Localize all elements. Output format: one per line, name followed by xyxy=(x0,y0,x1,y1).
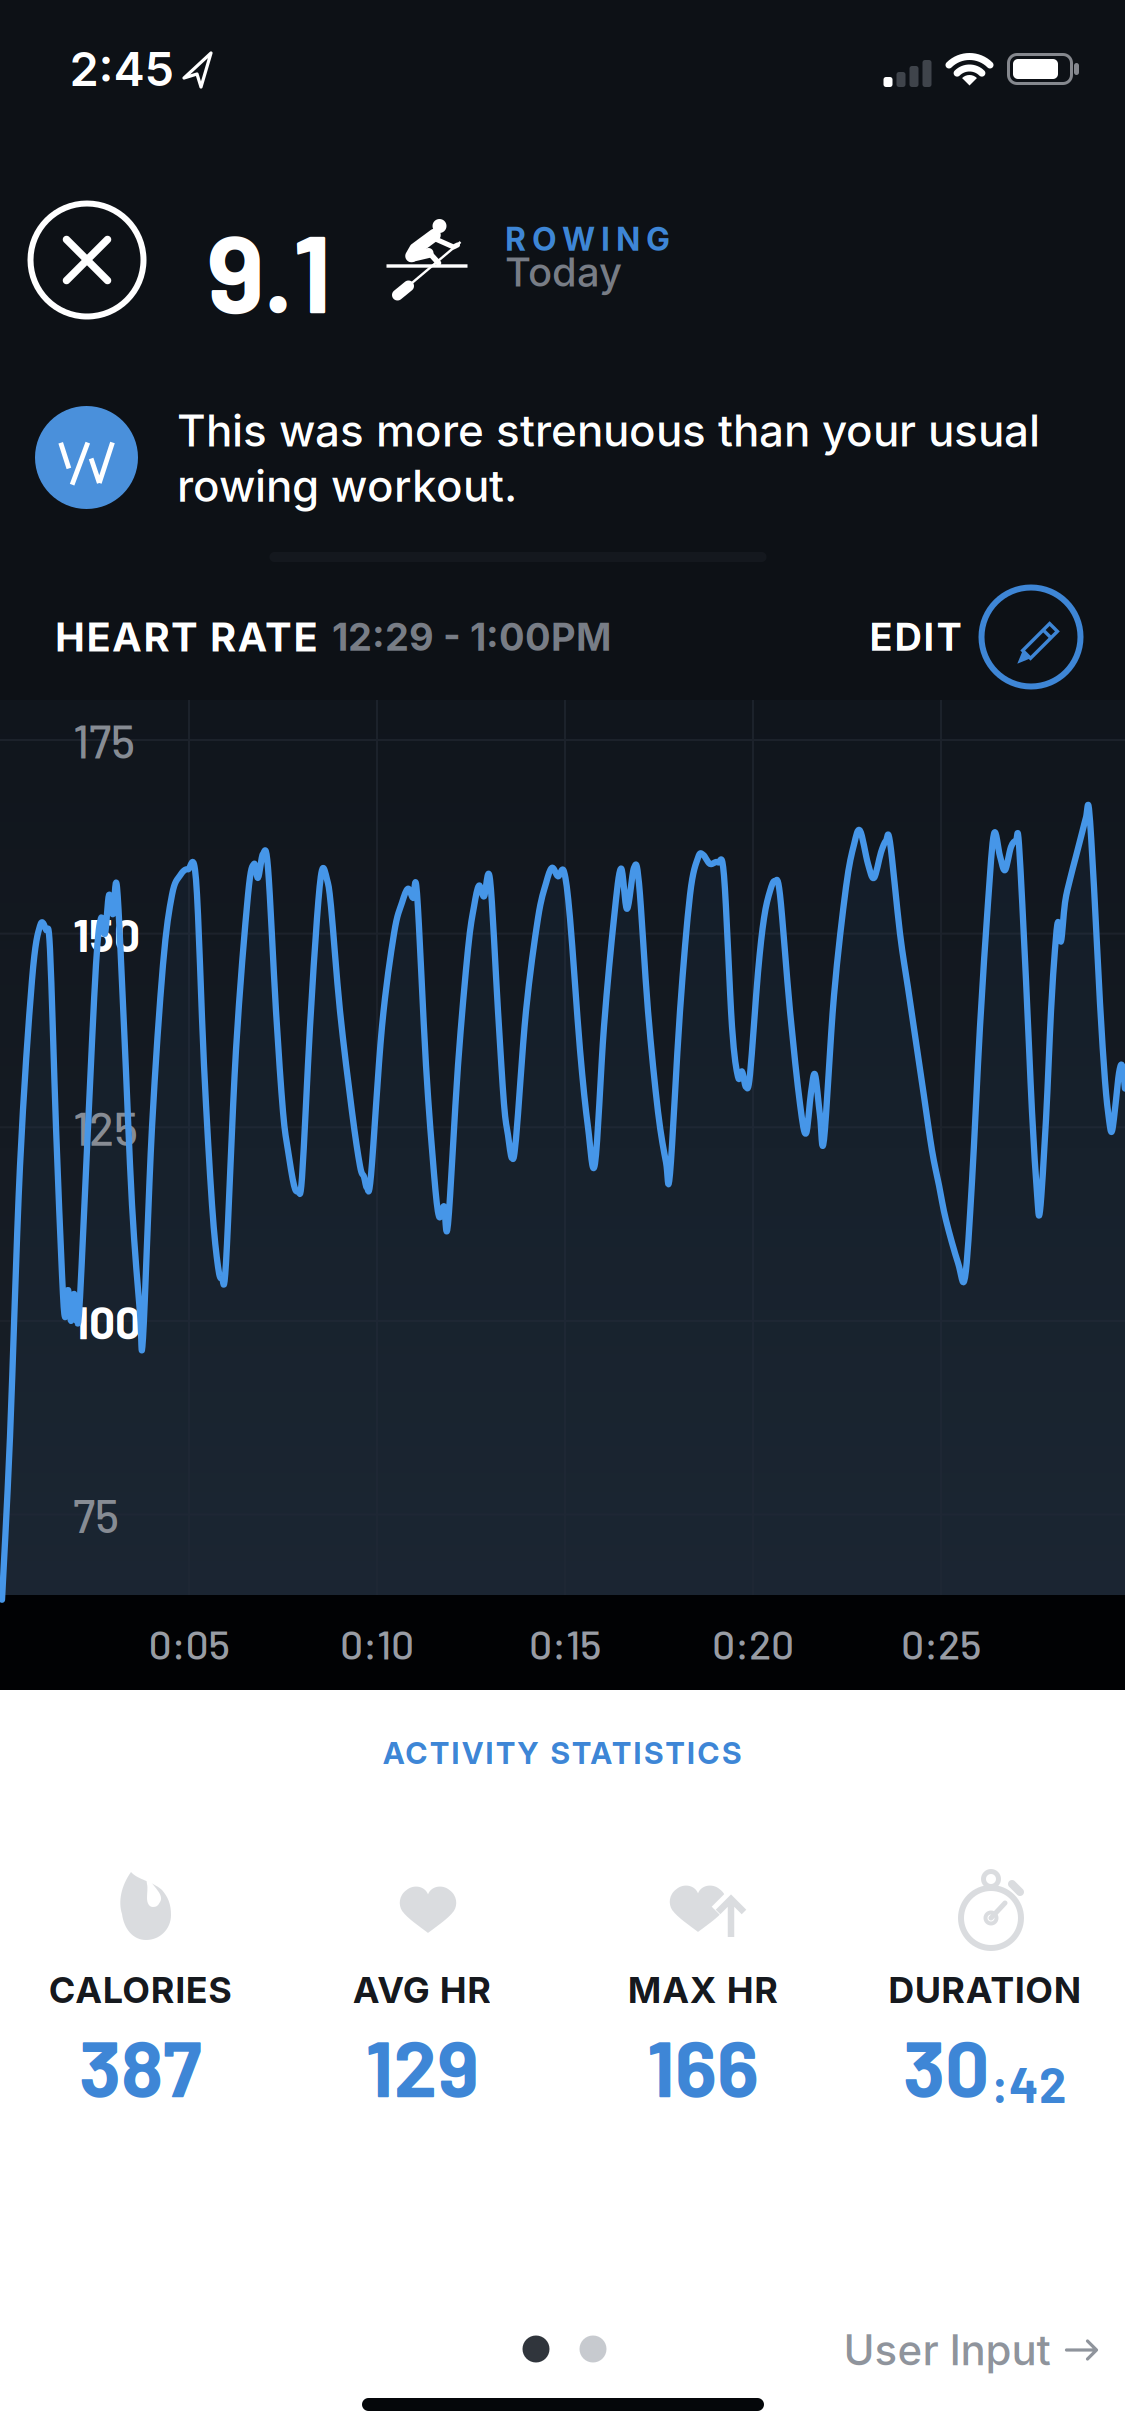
staticText: 387 xyxy=(79,2019,202,2113)
staticText: 166 xyxy=(647,2019,759,2113)
staticText: :42 xyxy=(991,2054,1066,2113)
staticText: 0:25 xyxy=(901,1618,981,1668)
staticText: This was more strenuous than your usual … xyxy=(177,404,1040,512)
staticText: MAX HR xyxy=(628,1968,778,2012)
staticText: 175 xyxy=(73,712,135,768)
staticText: 30 xyxy=(903,2019,989,2113)
staticText: 2:45 xyxy=(69,41,174,97)
staticText: 100 xyxy=(73,1293,141,1348)
staticText: HEART RATE xyxy=(55,613,317,661)
staticText: ROWING xyxy=(505,220,670,258)
button[interactable]: Edit heart rate xyxy=(869,587,1080,686)
staticText: ACTIVITY STATISTICS xyxy=(383,1735,742,1771)
staticText: 129 xyxy=(365,2019,478,2113)
staticText: 0:05 xyxy=(148,1618,229,1668)
button[interactable]: Close xyxy=(30,203,143,316)
staticText: User Input xyxy=(843,2325,1050,2375)
staticText: Today xyxy=(505,248,622,296)
staticText: 0:15 xyxy=(529,1618,601,1668)
staticText: EDIT xyxy=(869,614,961,660)
staticText: DURATION xyxy=(888,1968,1081,2012)
staticText: 150 xyxy=(73,906,140,961)
staticText: 125 xyxy=(73,1100,138,1155)
staticText: 12:29 - 1:00PM xyxy=(332,614,611,660)
staticText: 0:10 xyxy=(340,1618,414,1668)
staticText: CALORIES xyxy=(49,1968,232,2012)
staticText: 9.1 xyxy=(207,205,331,335)
staticText: 75 xyxy=(73,1487,119,1542)
staticText: 0:20 xyxy=(712,1618,794,1668)
button[interactable]: User Input xyxy=(843,2325,1100,2375)
staticText: AVG HR xyxy=(353,1968,491,2012)
